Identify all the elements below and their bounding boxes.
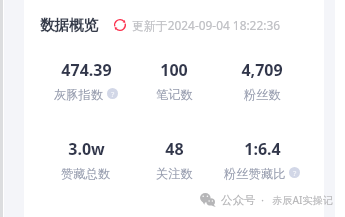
button[interactable]: 3.0w (42, 138, 130, 181)
staticText: 1:6.4 (244, 138, 281, 160)
button[interactable]: 100 (130, 59, 218, 102)
staticText: 公众号 (221, 193, 256, 207)
staticText: 100 (160, 59, 188, 81)
button[interactable]: 4,709 (218, 59, 306, 102)
button[interactable]: 指标说明 (107, 88, 118, 99)
button[interactable]: 1:6.4 (218, 138, 306, 181)
staticText: 更新于2024-09-04 18:22:36 (132, 17, 281, 33)
button[interactable]: 474.39 (42, 59, 130, 102)
staticText: 赤辰AI实操记 (272, 193, 333, 207)
staticText: 赞藏总数 (61, 166, 111, 181)
staticText: 474.39 (61, 59, 112, 81)
staticText: 48 (165, 138, 184, 160)
staticText: 粉丝数 (244, 87, 281, 102)
other: 刷新数据 (114, 19, 126, 31)
staticText: 笔记数 (156, 87, 193, 102)
staticText: ? (293, 168, 297, 178)
staticText: 粉丝赞藏比 (224, 166, 286, 181)
button[interactable]: 刷新数据 (114, 17, 281, 33)
button[interactable]: 数据概览 (40, 16, 99, 34)
staticText: 4,709 (241, 59, 283, 81)
staticText: 关注数 (156, 166, 193, 181)
staticText: ? (111, 89, 115, 99)
button[interactable]: 48 (130, 138, 218, 181)
staticText: · (261, 192, 265, 208)
staticText: 灰豚指数 (54, 87, 104, 102)
staticText: 3.0w (68, 138, 105, 160)
button[interactable]: 指标说明 (289, 167, 300, 178)
